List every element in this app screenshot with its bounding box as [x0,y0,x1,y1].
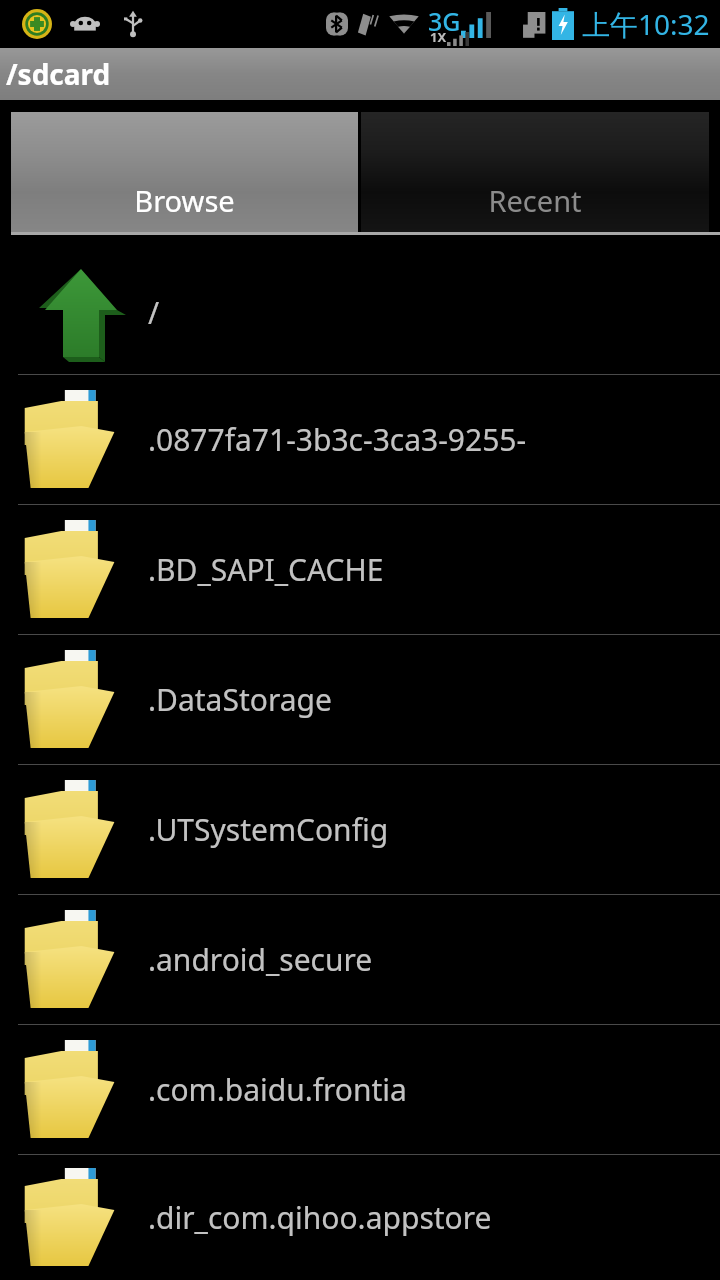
staticText: / [148,292,160,333]
staticText: .DataStorage [148,679,332,720]
staticText: .BD_SAPI_CACHE [148,549,384,590]
button[interactable]: Recent [361,112,709,232]
staticText: .com.baidu.frontia [148,1069,407,1110]
button[interactable]: .BD_SAPI_CACHE [0,505,720,634]
staticText: 1X [430,28,447,46]
button[interactable]: .UTSystemConfig [0,765,720,894]
button[interactable]: .dir_com.qihoo.appstore [0,1155,720,1280]
staticText: .UTSystemConfig [148,809,389,850]
button[interactable]: .0877fa71-3b3c-3ca3-9255-af2e4bca637a [0,375,720,504]
button[interactable]: Up to parent directory [0,251,720,374]
button[interactable]: Browse [11,112,358,232]
staticText: 3G [428,4,461,38]
staticText: Recent [488,181,582,220]
button[interactable]: .android_secure [0,895,720,1024]
staticText: .dir_com.qihoo.appstore [148,1197,492,1238]
button[interactable]: .DataStorage [0,635,720,764]
staticText: Browse [134,181,235,220]
staticText: .0877fa71-3b3c-3ca3-9255-af2e4bca637a [148,419,720,460]
staticText: .android_secure [148,939,373,980]
staticText: 上午10:32 [582,5,710,43]
button[interactable]: .com.baidu.frontia [0,1025,720,1154]
staticText: /sdcard [6,55,111,93]
